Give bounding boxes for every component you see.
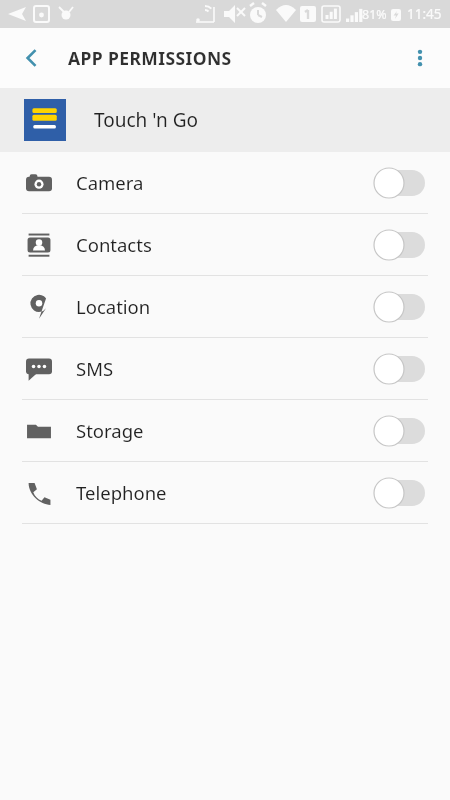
staticText: APP PERMISSIONS [68,46,232,70]
staticText: Camera [76,170,144,195]
staticText: SMS [76,356,114,381]
staticText: Storage [76,418,144,443]
button[interactable]: More options [398,36,442,80]
button[interactable]: Camera [0,152,450,213]
button[interactable]: Storage [0,400,450,461]
button[interactable]: Touch 'n Go [0,88,450,152]
other: Telephone permission toggle [372,477,428,509]
staticText: Contacts [76,232,152,257]
other: SMS permission toggle [372,353,428,385]
other: Contacts permission toggle [372,229,428,261]
staticText: 81% [362,6,387,23]
button[interactable]: Location [0,276,450,337]
button[interactable]: Navigate up [10,36,54,80]
staticText: 11:45 [407,5,442,23]
staticText: Touch 'n Go [94,107,198,133]
button[interactable]: Contacts [0,214,450,275]
other: Camera permission toggle [372,167,428,199]
staticText: Location [76,294,151,319]
button[interactable]: Telephone [0,462,450,523]
other: Storage permission toggle [372,415,428,447]
button[interactable]: SMS [0,338,450,399]
other: Location permission toggle [372,291,428,323]
staticText: Telephone [76,480,167,505]
